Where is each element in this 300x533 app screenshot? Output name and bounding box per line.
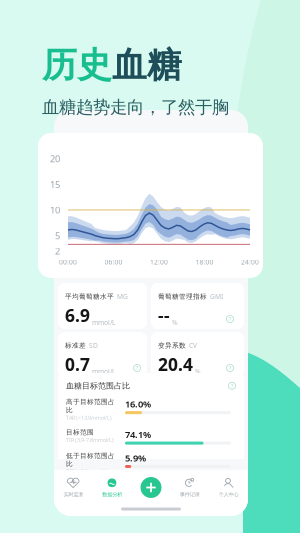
staticText: TIR (3.9-7.8mmol/L) [66, 436, 114, 443]
staticText: 标准差 [65, 341, 86, 349]
button[interactable]: 数据分析 [93, 477, 132, 498]
staticText: 低于目标范围占比 [66, 452, 115, 468]
button[interactable]: 事件记录 [170, 477, 209, 498]
staticText: GMI [210, 292, 223, 301]
staticText: 18:00 [195, 258, 213, 266]
staticText: 0.7 [65, 353, 90, 376]
button[interactable]: 标准差 [58, 332, 147, 378]
staticText: 6.9 [65, 304, 90, 327]
staticText: 实时监测 [63, 491, 83, 498]
staticText: 高于目标范围占比 [66, 398, 115, 414]
staticText: 5 [55, 229, 60, 242]
staticText: 血糖目标范围占比 [66, 381, 130, 391]
staticText: SD [89, 341, 98, 350]
staticText: mmol/L [92, 318, 115, 327]
staticText: 事件记录 [180, 491, 200, 498]
button[interactable]: 变异系数 [151, 332, 244, 378]
staticText: 数据分析 [102, 491, 122, 498]
staticText: 74.1% [125, 428, 151, 441]
staticText: 个人中心 [219, 491, 239, 498]
staticText: ? [136, 364, 138, 372]
staticText: MG [117, 292, 128, 301]
staticText: 2 [55, 245, 60, 257]
staticText: 12:00 [150, 258, 168, 266]
staticText: TBR (<3.9mmol/L) [66, 468, 109, 475]
staticText: 平均葡萄糖水平 [65, 292, 114, 300]
staticText: 5.9% [125, 452, 146, 464]
staticText: 24:00 [241, 258, 259, 266]
button[interactable]: 个人中心 [209, 477, 248, 498]
staticText: 06:00 [104, 258, 122, 266]
staticText: % [172, 318, 178, 327]
staticText: 血糖 [112, 44, 182, 87]
button[interactable]: 实时监测 [54, 477, 93, 498]
staticText: 16.0% [125, 398, 151, 410]
button[interactable]: 新增记录 [132, 477, 170, 498]
staticText: mmol/L [92, 367, 115, 376]
staticText: 10 [50, 204, 60, 216]
staticText: 20 [50, 152, 60, 165]
staticText: 20.4 [158, 353, 193, 376]
staticText: 血糖趋势走向，了然于胸 [42, 97, 229, 118]
staticText: -- [158, 304, 170, 327]
staticText: ? [231, 382, 233, 389]
staticText: 变异系数 [158, 341, 186, 349]
button[interactable]: 平均葡萄糖水平 [58, 283, 147, 329]
button[interactable]: 葡萄糖管理指标 [151, 283, 244, 329]
staticText: ? [229, 364, 231, 372]
staticText: 15 [50, 178, 60, 190]
staticText: ? [229, 315, 231, 323]
staticText: 葡萄糖管理指标 [158, 292, 207, 300]
staticText: % [195, 367, 201, 376]
staticText: 历史 [42, 44, 112, 87]
staticText: 00:00 [59, 258, 77, 266]
staticText: TAR (>13.9mmol/L) [66, 414, 112, 421]
staticText: 目标范围 [66, 428, 94, 436]
staticText: CV [189, 341, 197, 350]
